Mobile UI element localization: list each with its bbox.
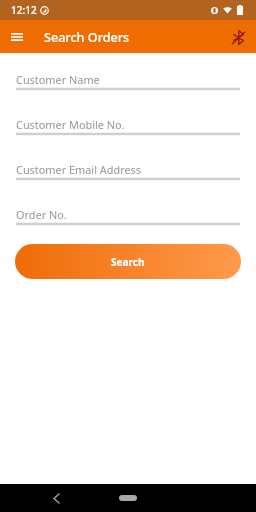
button[interactable]: Home xyxy=(119,495,137,501)
staticText: Search xyxy=(111,255,145,269)
button[interactable]: Order No. xyxy=(16,206,240,224)
button[interactable]: Customer Mobile No. xyxy=(16,116,240,134)
button[interactable]: Menu xyxy=(5,25,29,49)
staticText: Order No. xyxy=(16,207,67,222)
staticText: 12:12 xyxy=(11,3,37,17)
button[interactable]: Back xyxy=(47,489,65,507)
button[interactable]: Search xyxy=(15,244,241,279)
button[interactable]: Bluetooth disabled xyxy=(226,25,250,49)
staticText: Search Orders xyxy=(44,29,130,46)
staticText: Customer Name xyxy=(16,72,100,87)
button[interactable]: Customer Email Address xyxy=(16,161,240,179)
staticText: Customer Email Address xyxy=(16,162,142,177)
button[interactable]: Customer Name xyxy=(16,71,240,89)
staticText: Customer Mobile No. xyxy=(16,117,125,132)
